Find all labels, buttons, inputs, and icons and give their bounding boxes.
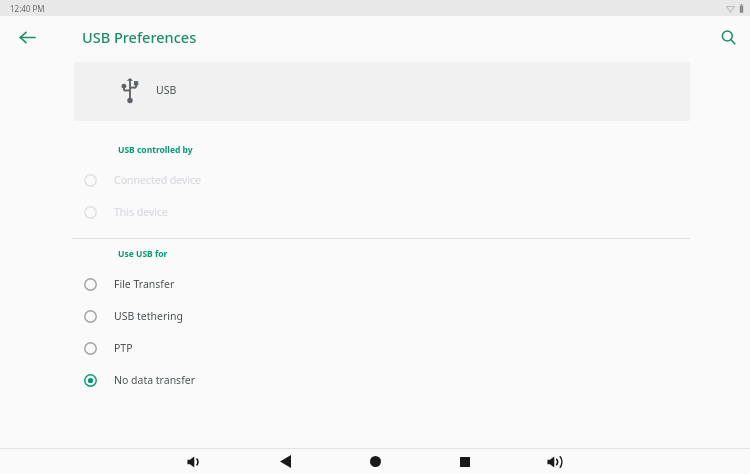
staticText: USB	[156, 83, 177, 97]
staticText: This device	[114, 205, 168, 219]
button[interactable]: USB	[0, 58, 750, 122]
staticText: Use USB for	[118, 248, 168, 260]
staticText: 12:40 PM	[10, 3, 45, 14]
staticText: No data transfer	[114, 373, 196, 387]
staticText: PTP	[114, 341, 133, 355]
button[interactable]: File Transfer	[0, 268, 750, 300]
staticText: File Transfer	[114, 277, 175, 291]
button[interactable]: No data transfer	[0, 364, 750, 396]
button[interactable]: Back	[8, 18, 46, 56]
staticText: USB tethering	[114, 309, 183, 323]
button[interactable]: Recent apps	[420, 449, 510, 474]
button[interactable]: USB tethering	[0, 300, 750, 332]
staticText: Connected device	[114, 173, 202, 187]
staticText: USB controlled by	[118, 144, 193, 156]
button[interactable]: Home	[330, 449, 420, 474]
button[interactable]: Search	[709, 18, 747, 56]
button[interactable]: Volume up	[510, 449, 600, 474]
button[interactable]: PTP	[0, 332, 750, 364]
button[interactable]: Volume down	[150, 449, 240, 474]
staticText: USB Preferences	[82, 27, 197, 47]
button[interactable]: Back	[240, 449, 330, 474]
